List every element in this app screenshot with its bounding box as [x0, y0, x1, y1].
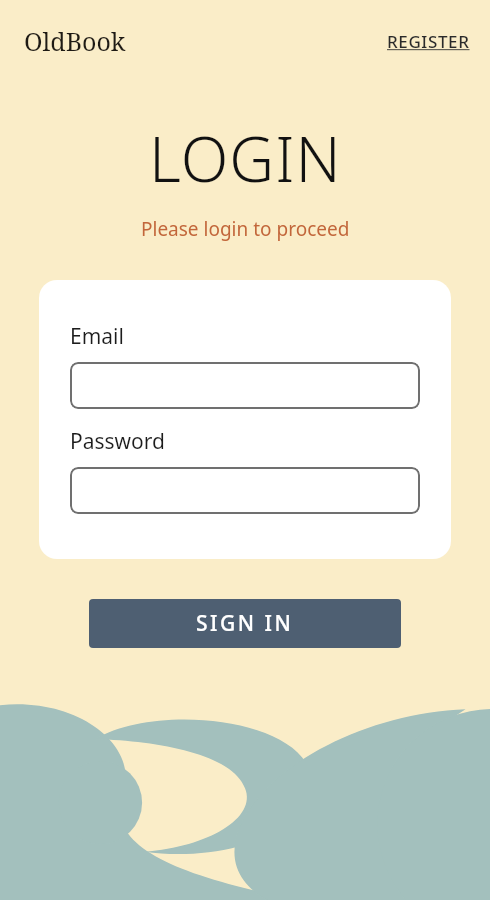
button[interactable]: REGISTER	[385, 26, 472, 57]
button[interactable]: Email input field	[70, 362, 420, 409]
staticText: LOGIN	[149, 116, 342, 200]
staticText: Email	[70, 322, 124, 351]
staticText: Please login to proceed	[141, 216, 350, 242]
button[interactable]: SIGN IN	[89, 599, 401, 648]
button[interactable]: Password input field	[70, 467, 420, 514]
staticText: Password	[70, 427, 165, 456]
staticText: OldBook	[24, 24, 126, 58]
staticText: SIGN IN	[196, 609, 294, 638]
staticText: REGISTER	[387, 30, 470, 53]
